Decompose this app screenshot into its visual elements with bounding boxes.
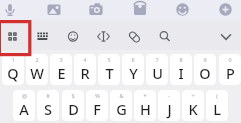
staticText: W — [30, 63, 44, 83]
staticText: R — [80, 63, 90, 83]
button[interactable]: @ — [13, 90, 35, 121]
staticText: Y — [129, 63, 138, 83]
staticText: 3 — [59, 56, 63, 63]
button[interactable]: 4 — [74, 54, 96, 85]
staticText: @ — [22, 92, 27, 99]
staticText: H — [140, 99, 151, 119]
button[interactable]: Voice input — [0, 0, 20, 20]
button[interactable]: ( — [206, 90, 228, 121]
button[interactable]: Gallery — [44, 0, 64, 20]
button[interactable]: $ — [62, 90, 84, 121]
staticText: * — [143, 92, 147, 99]
button[interactable]: Emoji — [59, 20, 87, 50]
button[interactable]: # — [37, 90, 59, 121]
staticText: T — [105, 63, 114, 83]
button[interactable]: Camera — [86, 0, 106, 20]
staticText: 4 — [83, 56, 87, 63]
staticText: O — [199, 63, 211, 83]
button[interactable]: Clipboard — [121, 20, 149, 50]
staticText: & — [119, 92, 124, 99]
staticText: % — [95, 92, 100, 99]
staticText: S — [44, 99, 52, 119]
button[interactable]: Stickers — [130, 0, 150, 20]
staticText: J — [167, 99, 172, 119]
button[interactable]: Keyboard layout — [29, 20, 57, 50]
staticText: 6 — [131, 56, 135, 63]
button[interactable]: % — [86, 90, 108, 121]
staticText: G — [116, 99, 127, 119]
button[interactable]: * — [134, 90, 156, 121]
staticText: I — [178, 63, 184, 83]
staticText: 0 — [228, 56, 232, 63]
staticText: L — [213, 99, 221, 119]
button[interactable]: 0 — [219, 54, 241, 85]
staticText: 2 — [35, 56, 39, 63]
button[interactable]: - — [158, 90, 180, 121]
staticText: F — [93, 99, 101, 119]
staticText: + — [191, 92, 195, 99]
button[interactable]: + — [182, 90, 204, 121]
button[interactable]: 5 — [98, 54, 120, 85]
staticText: Q — [7, 63, 19, 83]
button[interactable]: Collapse keyboard — [212, 20, 240, 50]
staticText: 7 — [155, 56, 159, 63]
button[interactable]: More options — [216, 0, 236, 20]
staticText: D — [68, 99, 79, 119]
button[interactable]: 2 — [26, 54, 48, 85]
staticText: 8 — [179, 56, 183, 63]
button[interactable]: Apps — [0, 20, 26, 50]
staticText: 9 — [203, 56, 207, 63]
staticText: $ — [71, 92, 75, 99]
button[interactable]: & — [110, 90, 132, 121]
button[interactable]: Search — [151, 20, 179, 50]
button[interactable]: 3 — [50, 54, 72, 85]
button[interactable]: 8 — [170, 54, 192, 85]
staticText: # — [46, 92, 50, 99]
staticText: - — [168, 92, 170, 99]
staticText: K — [188, 99, 198, 119]
button[interactable]: 1 — [2, 54, 24, 85]
staticText: P — [226, 63, 235, 83]
button[interactable]: 9 — [194, 54, 216, 85]
button[interactable]: Emoji — [173, 0, 193, 20]
button[interactable]: 7 — [146, 54, 168, 85]
staticText: 1 — [11, 56, 15, 63]
staticText: A — [19, 99, 29, 119]
staticText: E — [57, 63, 66, 83]
button[interactable]: 6 — [122, 54, 144, 85]
button[interactable]: Emoticons — [90, 20, 118, 50]
staticText: U — [152, 63, 163, 83]
staticText: ( — [216, 92, 218, 99]
staticText: 5 — [107, 56, 111, 63]
